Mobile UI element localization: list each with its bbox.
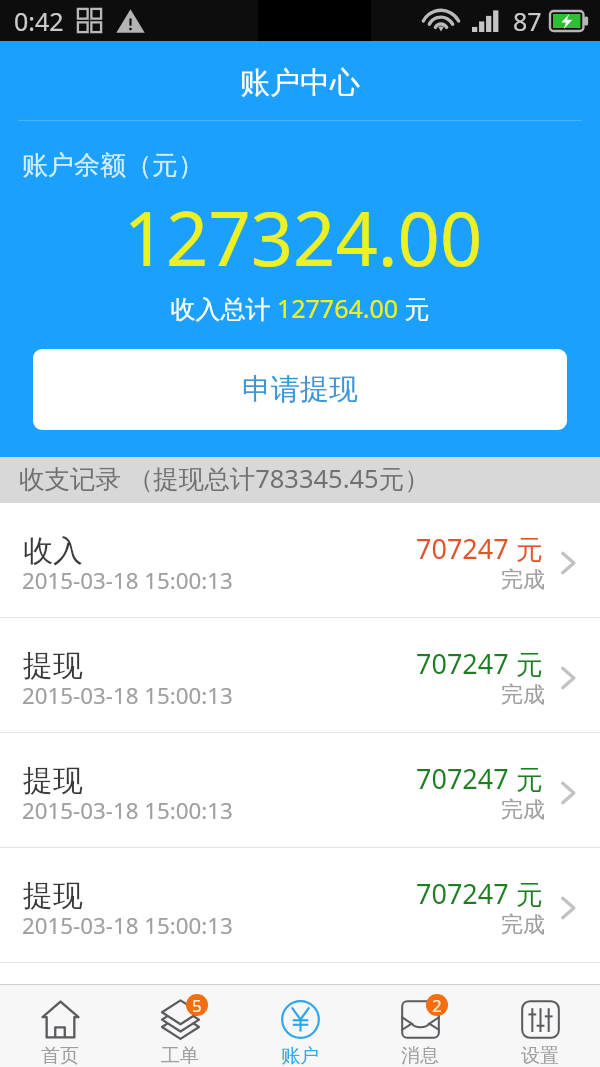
other: 消息 <box>401 1000 440 1039</box>
button[interactable]: 收入 <box>0 503 600 618</box>
staticText: 2015-03-18 15:00:13 <box>22 910 233 940</box>
staticText: 707247 元 <box>416 875 543 912</box>
other: 账户 <box>281 1000 320 1039</box>
staticText: 127324.00 <box>3 187 600 288</box>
staticText: 2 <box>432 994 442 1016</box>
staticText: 完成 <box>501 566 545 594</box>
button[interactable]: 设置 <box>480 985 600 1067</box>
staticText: 账户 <box>281 1044 319 1067</box>
staticText: 完成 <box>501 796 545 824</box>
staticText: 2015-03-18 15:00:13 <box>22 680 233 710</box>
staticText: 完成 <box>501 681 545 709</box>
staticText: 2015-03-18 15:00:13 <box>22 795 233 825</box>
staticText: 2015-03-18 15:00:13 <box>22 565 233 595</box>
staticText: 提现 <box>23 877 83 915</box>
staticText: 首页 <box>41 1044 79 1067</box>
staticText: 707247 元 <box>416 645 543 682</box>
staticText: 0:42 <box>14 4 64 38</box>
button[interactable]: 申请提现 <box>33 349 567 430</box>
other: 设置 <box>521 1000 560 1039</box>
staticText: 提现 <box>23 647 83 685</box>
button[interactable]: 提现 <box>0 848 600 963</box>
staticText: 完成 <box>501 911 545 939</box>
staticText: 消息 <box>401 1044 439 1067</box>
button[interactable]: 工单 <box>120 985 240 1067</box>
staticText: 申请提现 <box>242 371 358 408</box>
button[interactable]: 提现 <box>0 733 600 848</box>
staticText: 87 <box>513 4 542 38</box>
staticText: 设置 <box>521 1044 559 1067</box>
staticText: 5 <box>192 994 202 1016</box>
button[interactable]: 消息 <box>360 985 480 1067</box>
staticText: 707247 元 <box>416 530 543 567</box>
staticText: 账户中心 <box>0 64 600 102</box>
button[interactable]: 提现 <box>0 618 600 733</box>
staticText: 收入 <box>23 532 83 570</box>
staticText: 707247 元 <box>416 760 543 797</box>
staticText: 工单 <box>161 1044 199 1067</box>
button[interactable]: 账户 <box>240 985 360 1067</box>
staticText: 收支记录 （提现总计783345.45元） <box>19 461 430 496</box>
staticText: 收入总计 127764.00 元 <box>0 291 600 325</box>
staticText: 提现 <box>23 762 83 800</box>
button[interactable]: 首页 <box>0 985 120 1067</box>
staticText: 账户余额（元） <box>22 149 204 182</box>
other: 工单 <box>161 1000 200 1039</box>
other: 首页 <box>41 1000 80 1039</box>
